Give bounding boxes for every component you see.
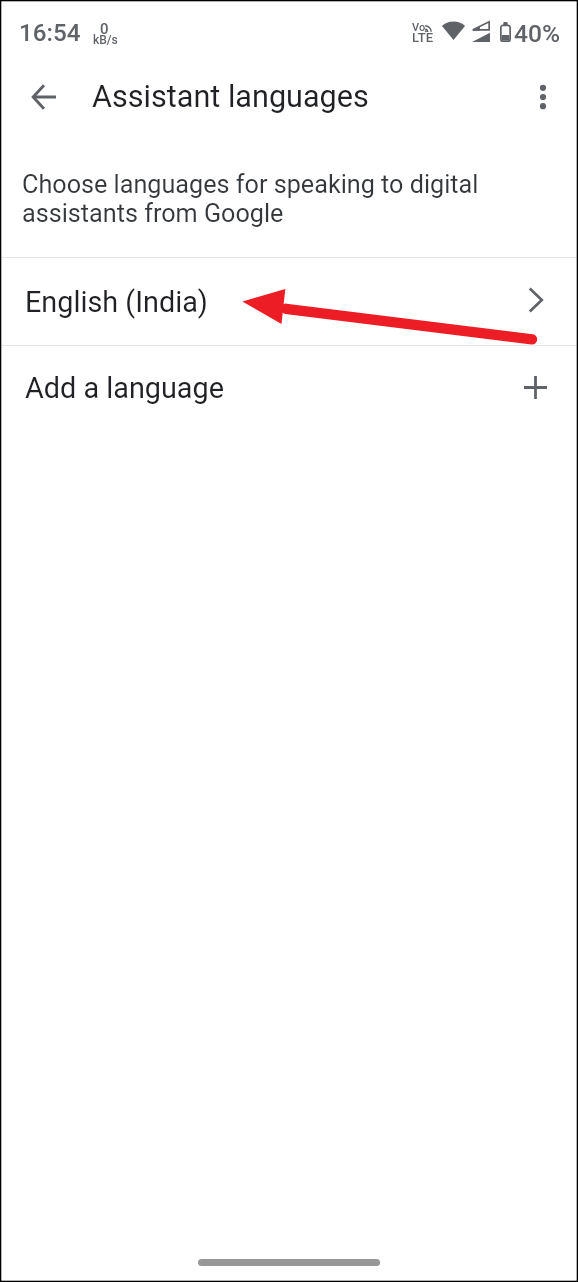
button[interactable]: English (India) [0, 258, 578, 345]
staticText: LTE [412, 30, 433, 45]
staticText: 40% [514, 19, 561, 48]
button[interactable]: Open language options [513, 278, 557, 322]
staticText: 16:54 [19, 19, 81, 47]
button[interactable]: Add a language [0, 344, 578, 431]
staticText: Choose languages for speaking to digital… [22, 170, 492, 228]
staticText: 0 [100, 20, 109, 38]
button[interactable]: More options [519, 73, 567, 121]
staticText: Vo [412, 21, 426, 34]
staticText: English (India) [25, 285, 208, 319]
button[interactable]: Navigate up [20, 73, 68, 121]
staticText: Add a language [25, 371, 224, 405]
staticText: kB/s [93, 33, 118, 47]
staticText: Assistant languages [92, 79, 369, 115]
button[interactable]: Add a language [513, 365, 557, 409]
